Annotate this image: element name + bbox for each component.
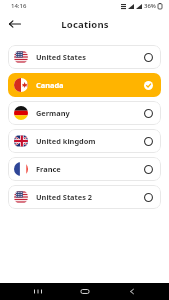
staticText: United kingdom (36, 136, 96, 146)
button[interactable]: Germany (8, 101, 161, 125)
button[interactable]: Recents (24, 283, 52, 300)
staticText: France (36, 164, 61, 174)
staticText: Locations (61, 18, 109, 31)
button[interactable]: Canada (8, 73, 161, 97)
staticText: 14:16 (11, 2, 27, 10)
button[interactable]: United States 2 (8, 185, 161, 209)
staticText: Canada (36, 80, 64, 90)
button[interactable]: Home (71, 283, 99, 300)
button[interactable]: Back (118, 283, 146, 300)
button[interactable]: Back (4, 13, 26, 35)
button[interactable]: France (8, 157, 161, 181)
button[interactable]: United kingdom (8, 129, 161, 153)
staticText: 36% (144, 2, 156, 10)
staticText: United States (36, 52, 86, 62)
staticText: Germany (36, 108, 70, 118)
button[interactable]: United States (8, 45, 161, 69)
staticText: United States 2 (36, 192, 92, 202)
